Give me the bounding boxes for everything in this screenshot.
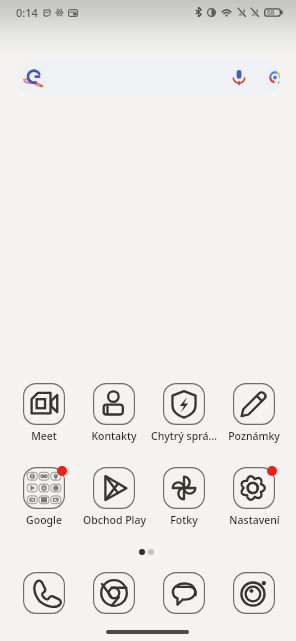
button[interactable]: Obchod Play xyxy=(79,467,149,527)
button[interactable]: Google Lens xyxy=(268,71,280,85)
staticText: Chytrý správ… xyxy=(149,429,219,443)
button[interactable]: Chytrý správ… xyxy=(149,383,219,443)
button[interactable]: Google xyxy=(9,467,79,527)
staticText: Poznámky xyxy=(228,429,280,443)
staticText: 68 xyxy=(267,8,275,17)
staticText: 0:14 xyxy=(16,5,38,20)
staticText: Fotky xyxy=(170,513,198,527)
button[interactable]: Chrome xyxy=(93,572,135,614)
staticText: Kontakty xyxy=(91,429,137,443)
staticText: Meet xyxy=(31,429,57,443)
staticText: Google xyxy=(26,513,62,527)
button[interactable]: Voice search xyxy=(232,69,246,86)
button[interactable]: Meet xyxy=(9,383,79,443)
button[interactable]: Nastavení xyxy=(219,467,289,527)
button[interactable]: Camera xyxy=(233,572,275,614)
button[interactable]: Phone xyxy=(23,572,65,614)
button[interactable]: Poznámky xyxy=(219,383,289,443)
staticText: Nastavení xyxy=(229,513,280,527)
button[interactable]: Search xyxy=(16,59,280,96)
staticText: Obchod Play xyxy=(83,513,146,527)
button[interactable]: Kontakty xyxy=(79,383,149,443)
button[interactable]: Messages xyxy=(163,572,205,614)
button[interactable]: Fotky xyxy=(149,467,219,527)
